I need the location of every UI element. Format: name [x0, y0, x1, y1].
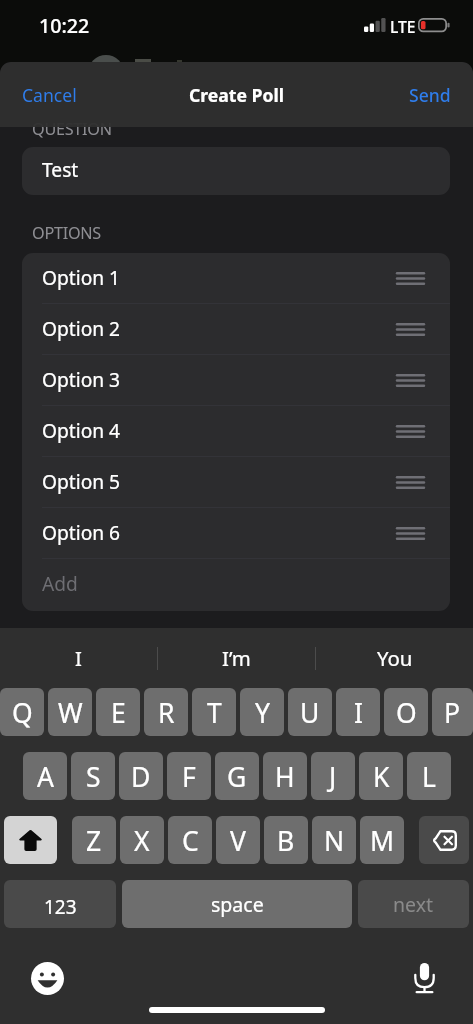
button[interactable]: I: [336, 688, 380, 736]
button[interactable]: Option 5: [22, 457, 450, 508]
button[interactable]: space: [122, 880, 352, 928]
staticText: Add: [42, 570, 78, 596]
staticText: N: [324, 823, 345, 859]
staticText: Z: [86, 823, 102, 859]
button[interactable]: P: [432, 688, 473, 736]
button[interactable]: next: [358, 880, 469, 928]
staticText: Option 1: [42, 264, 121, 290]
button[interactable]: Add: [22, 559, 450, 610]
button[interactable]: T: [192, 688, 236, 736]
staticText: Option 5: [42, 468, 121, 494]
other: Reorder Option 6: [397, 527, 424, 540]
button[interactable]: Cancel: [0, 62, 99, 127]
staticText: B: [277, 823, 295, 859]
button[interactable]: I: [0, 628, 157, 688]
staticText: Cancel: [22, 83, 77, 107]
button[interactable]: O: [384, 688, 428, 736]
staticText: 123: [44, 894, 77, 920]
button[interactable]: B: [264, 816, 308, 864]
button[interactable]: 123: [4, 880, 116, 928]
button[interactable]: K: [359, 752, 403, 800]
staticText: Q: [12, 695, 33, 731]
button[interactable]: L: [407, 752, 451, 800]
button[interactable]: Send: [387, 62, 473, 127]
button[interactable]: Option 6: [22, 508, 450, 559]
staticText: T: [207, 695, 222, 731]
button[interactable]: Option 3: [22, 355, 450, 406]
staticText: Send: [409, 83, 451, 107]
button[interactable]: M: [360, 816, 404, 864]
staticText: OPTIONS: [32, 222, 102, 242]
staticText: G: [227, 759, 247, 795]
staticText: V: [230, 823, 246, 859]
button[interactable]: D: [119, 752, 163, 800]
button[interactable]: C: [168, 816, 212, 864]
button[interactable]: Emoji keyboard: [24, 955, 70, 1001]
staticText: QUESTION: [32, 118, 112, 138]
button[interactable]: Dictation: [401, 955, 447, 1001]
button[interactable]: Q: [0, 688, 44, 736]
staticText: Option 6: [42, 519, 121, 545]
other: Reorder Option 5: [397, 476, 424, 489]
staticText: P: [444, 695, 461, 731]
button[interactable]: Option 4: [22, 406, 450, 457]
button[interactable]: F: [167, 752, 211, 800]
staticText: Create Poll: [189, 83, 284, 107]
button[interactable]: E: [96, 688, 140, 736]
button[interactable]: Option 2: [22, 304, 450, 355]
staticText: U: [300, 695, 320, 731]
other: Battery low: [418, 18, 451, 33]
staticText: Y: [255, 695, 270, 731]
button[interactable]: A: [23, 752, 67, 800]
staticText: F: [182, 759, 196, 795]
button[interactable]: Backspace: [419, 816, 469, 864]
staticText: I: [354, 695, 363, 731]
other: Reorder Option 3: [397, 374, 424, 387]
button[interactable]: Test: [22, 147, 450, 195]
button[interactable]: Shift: [4, 816, 57, 864]
button[interactable]: U: [288, 688, 332, 736]
staticText: L: [422, 759, 436, 795]
staticText: next: [393, 891, 434, 918]
button[interactable]: Z: [72, 816, 116, 864]
staticText: I: [75, 644, 82, 672]
button[interactable]: You: [316, 628, 473, 688]
staticText: Test: [42, 156, 79, 182]
staticText: J: [329, 759, 337, 795]
button[interactable]: Y: [240, 688, 284, 736]
staticText: You: [377, 644, 413, 672]
staticText: C: [182, 823, 199, 859]
staticText: I’m: [222, 644, 251, 672]
staticText: R: [158, 695, 175, 731]
other: Cellular signal: [364, 18, 385, 32]
button[interactable]: H: [263, 752, 307, 800]
staticText: X: [134, 823, 150, 859]
staticText: D: [131, 759, 151, 795]
other: Reorder Option 1: [397, 272, 424, 285]
staticText: K: [373, 759, 390, 795]
button[interactable]: I’m: [158, 628, 315, 688]
button[interactable]: X: [120, 816, 164, 864]
button[interactable]: R: [144, 688, 188, 736]
button[interactable]: Option 1: [22, 253, 450, 304]
staticText: H: [275, 759, 295, 795]
staticText: W: [58, 695, 83, 731]
button[interactable]: J: [311, 752, 355, 800]
staticText: 10:22: [39, 12, 90, 39]
staticText: Option 3: [42, 366, 121, 392]
other: Reorder Option 4: [397, 425, 424, 438]
button[interactable]: G: [215, 752, 259, 800]
button[interactable]: S: [71, 752, 115, 800]
staticText: Option 4: [42, 417, 121, 443]
button[interactable]: W: [48, 688, 92, 736]
button[interactable]: N: [312, 816, 356, 864]
staticText: A: [37, 759, 54, 795]
staticText: LTE: [390, 16, 416, 37]
staticText: E: [111, 695, 126, 731]
staticText: M: [370, 823, 395, 859]
staticText: space: [211, 891, 264, 918]
staticText: S: [86, 759, 101, 795]
staticText: Option 2: [42, 315, 121, 341]
button[interactable]: V: [216, 816, 260, 864]
staticText: O: [396, 695, 417, 731]
